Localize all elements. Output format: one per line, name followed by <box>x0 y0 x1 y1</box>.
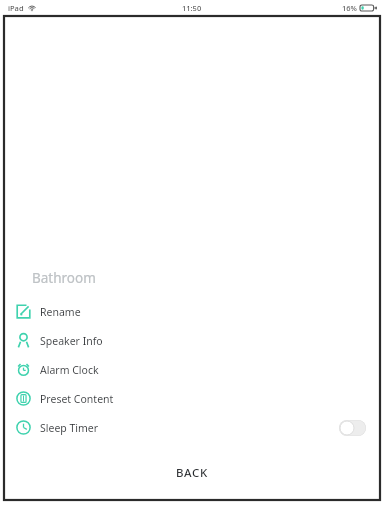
button[interactable]: Preset Content <box>6 384 378 413</box>
button[interactable]: Rename <box>6 297 378 326</box>
staticText: Preset Content <box>40 392 114 406</box>
staticText: Rename <box>40 305 81 319</box>
button[interactable]: Speaker Info <box>6 326 378 355</box>
button[interactable]: Sleep Timer toggle <box>339 420 366 436</box>
staticText: Bathroom <box>32 269 96 287</box>
button[interactable]: BACK <box>6 456 378 490</box>
staticText: BACK <box>176 465 208 481</box>
staticText: 16% <box>342 3 357 13</box>
button[interactable]: Sleep Timer <box>6 413 378 442</box>
staticText: 11:50 <box>182 3 202 13</box>
button[interactable]: Alarm Clock <box>6 355 378 384</box>
staticText: Speaker Info <box>40 334 103 348</box>
staticText: iPad <box>8 3 24 13</box>
staticText: Sleep Timer <box>40 421 99 435</box>
staticText: Alarm Clock <box>40 363 99 377</box>
